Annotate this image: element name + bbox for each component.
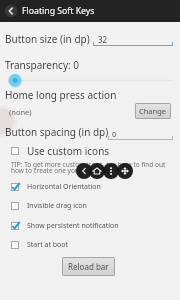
staticText: Button spacing (in dp) <box>5 125 109 139</box>
button[interactable]: Use custom icons <box>0 143 180 159</box>
button[interactable]: Start at boot <box>0 237 180 253</box>
staticText: Floating Soft Keys <box>22 5 95 17</box>
button[interactable]: Show persistent notification <box>0 218 180 234</box>
button[interactable]: Change <box>135 103 171 119</box>
staticText: (none) <box>9 107 32 117</box>
button[interactable]: Home <box>89 163 105 179</box>
button[interactable]: Menu <box>103 163 119 179</box>
button[interactable]: Navigate up <box>0 0 22 22</box>
staticText: Invisible drag icon <box>27 201 87 211</box>
staticText: Show persistent notification <box>27 221 119 231</box>
button[interactable]: Move <box>117 163 133 179</box>
staticText: TIP: To get more custom icons, tap here … <box>11 160 166 175</box>
button[interactable]: Reload bar <box>62 257 115 276</box>
staticText: Horizontal Orientation <box>27 182 101 192</box>
staticText: Home long press action <box>5 88 117 102</box>
button[interactable]: Horizontal Orientation <box>0 179 180 195</box>
staticText: Use custom icons <box>27 144 110 158</box>
button[interactable]: Back <box>76 163 92 179</box>
staticText: Reload bar <box>68 261 109 272</box>
staticText: Start at boot <box>27 240 69 250</box>
staticText: 32 <box>98 34 108 45</box>
staticText: Transparency: 0 <box>5 58 79 72</box>
button[interactable]: Invisible drag icon <box>0 198 180 214</box>
staticText: Change <box>139 106 167 116</box>
staticText: 0 <box>112 129 117 139</box>
staticText: Button size (in dp) <box>5 32 90 46</box>
